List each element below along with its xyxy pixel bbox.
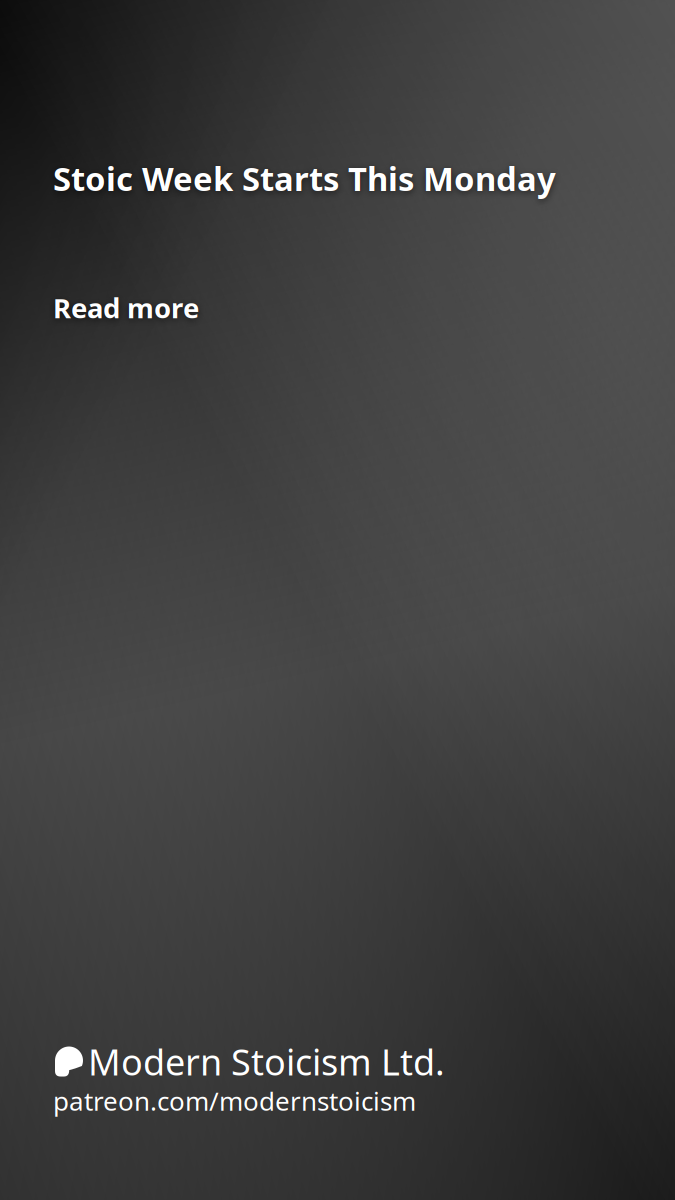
staticText: Read more (53, 289, 199, 326)
button[interactable]: patreon.com/modernstoicism (53, 1083, 416, 1118)
button[interactable]: Modern Stoicism Ltd. (55, 1037, 445, 1086)
staticText: Stoic Week Starts This Monday (53, 156, 556, 201)
button[interactable]: Stoic Week Starts This Monday (53, 156, 556, 201)
staticText: patreon.com/modernstoicism (53, 1083, 416, 1118)
staticText: Modern Stoicism Ltd. (88, 1037, 445, 1086)
button[interactable]: Read more (53, 289, 199, 326)
